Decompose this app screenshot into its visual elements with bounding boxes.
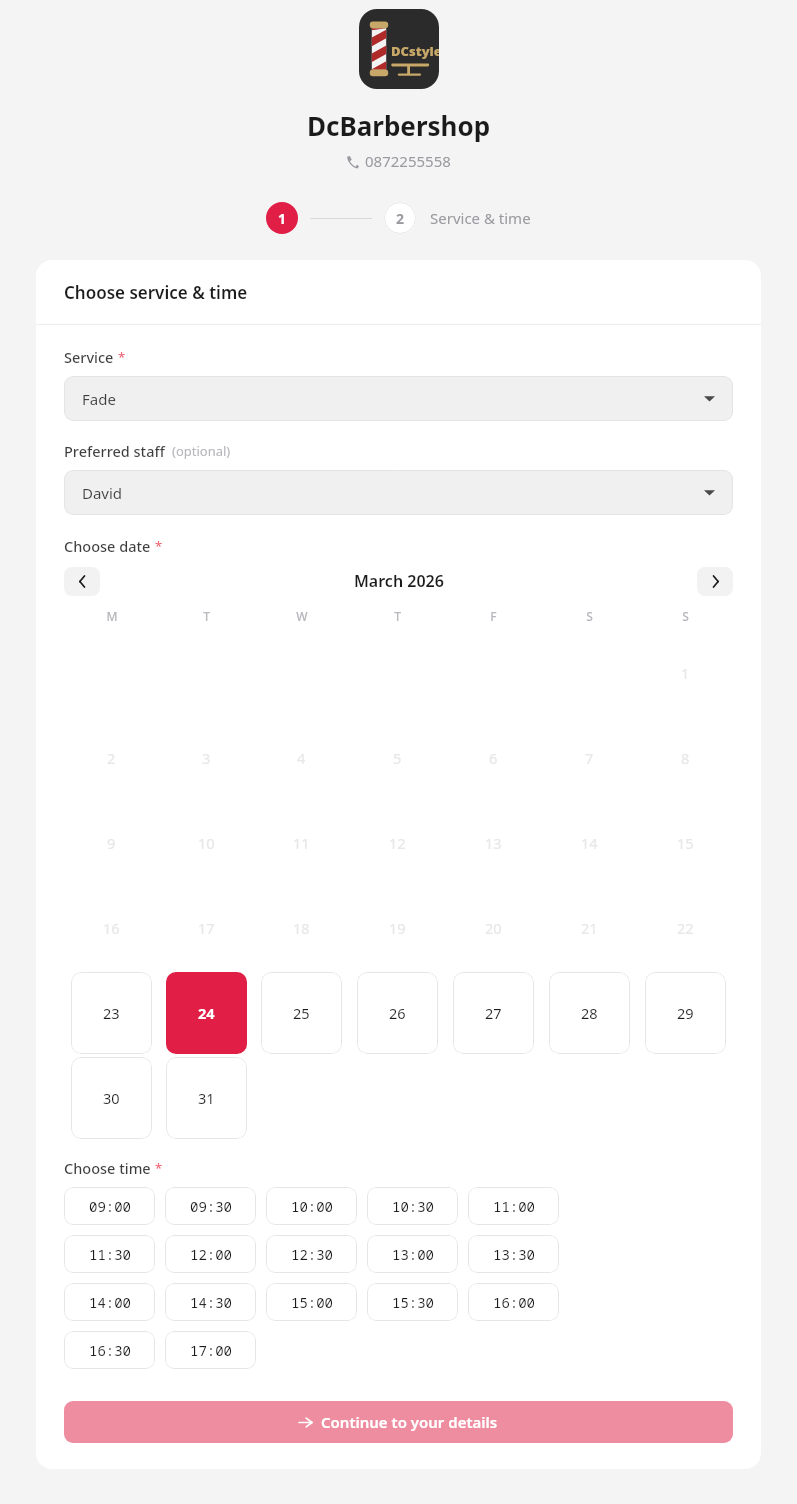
staticText: 10:30 bbox=[392, 1197, 434, 1216]
staticText: DCstyle bbox=[391, 42, 439, 60]
button[interactable]: DcBarbershop logo bbox=[359, 9, 439, 89]
button[interactable]: 31 bbox=[166, 1057, 247, 1139]
button[interactable]: Fade bbox=[64, 376, 733, 421]
button[interactable]: 15:00 bbox=[266, 1283, 357, 1321]
button[interactable]: 27 bbox=[453, 972, 534, 1054]
staticText: 11 bbox=[293, 833, 310, 853]
staticText: 15:00 bbox=[291, 1293, 333, 1312]
button[interactable]: 14:30 bbox=[165, 1283, 256, 1321]
button[interactable]: 16:30 bbox=[64, 1331, 155, 1369]
staticText: S bbox=[586, 608, 593, 624]
staticText: 13:00 bbox=[392, 1245, 434, 1264]
staticText: 11:00 bbox=[493, 1197, 535, 1216]
staticText: 17 bbox=[198, 918, 215, 938]
button[interactable]: 26 bbox=[357, 972, 438, 1054]
staticText: Choose date bbox=[64, 536, 151, 556]
staticText: Service & time bbox=[430, 208, 531, 228]
staticText: 9 bbox=[107, 833, 116, 853]
staticText: T bbox=[203, 608, 210, 624]
staticText: 12 bbox=[389, 833, 406, 853]
staticText: 24 bbox=[198, 1003, 215, 1023]
button[interactable]: 11:30 bbox=[64, 1235, 155, 1273]
staticText: March 2026 bbox=[354, 570, 444, 592]
staticText: 09:30 bbox=[190, 1197, 232, 1216]
staticText: 12:30 bbox=[291, 1245, 333, 1264]
staticText: 17:00 bbox=[190, 1341, 232, 1360]
staticText: 13:30 bbox=[493, 1245, 535, 1264]
button[interactable]: 12:00 bbox=[165, 1235, 256, 1273]
button[interactable]: 25 bbox=[261, 972, 342, 1054]
staticText: 14:00 bbox=[89, 1293, 131, 1312]
staticText: Fade bbox=[82, 389, 116, 409]
staticText: * bbox=[155, 1159, 163, 1177]
staticText: 20 bbox=[485, 918, 502, 938]
staticText: (optional) bbox=[172, 442, 231, 460]
button[interactable]: 29 bbox=[645, 972, 726, 1054]
staticText: 6 bbox=[489, 748, 498, 768]
staticText: 19 bbox=[389, 918, 406, 938]
staticText: 1 bbox=[681, 663, 690, 683]
staticText: David bbox=[82, 483, 123, 503]
staticText: 11:30 bbox=[89, 1245, 131, 1264]
button[interactable]: 13:30 bbox=[468, 1235, 559, 1273]
staticText: F bbox=[490, 608, 497, 624]
button[interactable]: 12:30 bbox=[266, 1235, 357, 1273]
button[interactable]: 10:30 bbox=[367, 1187, 458, 1225]
staticText: 7 bbox=[585, 748, 594, 768]
staticText: Choose time bbox=[64, 1158, 151, 1178]
staticText: 8 bbox=[681, 748, 690, 768]
button[interactable]: 15:30 bbox=[367, 1283, 458, 1321]
button[interactable]: Previous month bbox=[64, 567, 100, 596]
button[interactable]: David bbox=[64, 470, 733, 515]
staticText: T bbox=[394, 608, 401, 624]
button[interactable]: 16:00 bbox=[468, 1283, 559, 1321]
button[interactable]: 2 bbox=[384, 202, 416, 234]
staticText: 10 bbox=[198, 833, 215, 853]
staticText: 2 bbox=[107, 748, 116, 768]
staticText: 26 bbox=[389, 1003, 406, 1023]
staticText: 15 bbox=[677, 833, 694, 853]
staticText: 22 bbox=[677, 918, 694, 938]
staticText: 30 bbox=[103, 1088, 120, 1108]
staticText: 16:00 bbox=[493, 1293, 535, 1312]
staticText: 14:30 bbox=[190, 1293, 232, 1312]
staticText: 09:00 bbox=[89, 1197, 131, 1216]
staticText: 5 bbox=[393, 748, 402, 768]
staticText: 3 bbox=[202, 748, 211, 768]
button[interactable]: 30 bbox=[71, 1057, 152, 1139]
staticText: 29 bbox=[677, 1003, 694, 1023]
staticText: 2 bbox=[396, 209, 405, 228]
staticText: DcBarbershop bbox=[307, 108, 491, 143]
staticText: Continue to your details bbox=[321, 1412, 498, 1432]
button[interactable]: 17:00 bbox=[165, 1331, 256, 1369]
button[interactable]: 09:30 bbox=[165, 1187, 256, 1225]
button[interactable]: 13:00 bbox=[367, 1235, 458, 1273]
staticText: W bbox=[296, 608, 308, 624]
staticText: 31 bbox=[198, 1088, 215, 1108]
staticText: 13 bbox=[485, 833, 502, 853]
staticText: * bbox=[118, 348, 126, 366]
button[interactable]: 24 bbox=[166, 972, 247, 1054]
staticText: Choose service & time bbox=[64, 281, 248, 304]
button[interactable]: 09:00 bbox=[64, 1187, 155, 1225]
staticText: S bbox=[682, 608, 689, 624]
staticText: 10:00 bbox=[291, 1197, 333, 1216]
button[interactable]: 28 bbox=[549, 972, 630, 1054]
staticText: * bbox=[155, 537, 163, 555]
button[interactable]: Continue to your details bbox=[64, 1401, 733, 1443]
staticText: Service bbox=[64, 347, 114, 367]
staticText: 25 bbox=[293, 1003, 310, 1023]
staticText: 23 bbox=[103, 1003, 120, 1023]
staticText: 16:30 bbox=[89, 1341, 131, 1360]
staticText: 27 bbox=[485, 1003, 502, 1023]
button[interactable]: 23 bbox=[71, 972, 152, 1054]
staticText: M bbox=[106, 608, 118, 624]
button[interactable]: Next month bbox=[697, 567, 733, 596]
button[interactable]: 11:00 bbox=[468, 1187, 559, 1225]
button[interactable]: 10:00 bbox=[266, 1187, 357, 1225]
staticText: 14 bbox=[581, 833, 598, 853]
button[interactable]: 1 bbox=[266, 202, 298, 234]
staticText: 4 bbox=[297, 748, 306, 768]
staticText: 15:30 bbox=[392, 1293, 434, 1312]
button[interactable]: 14:00 bbox=[64, 1283, 155, 1321]
